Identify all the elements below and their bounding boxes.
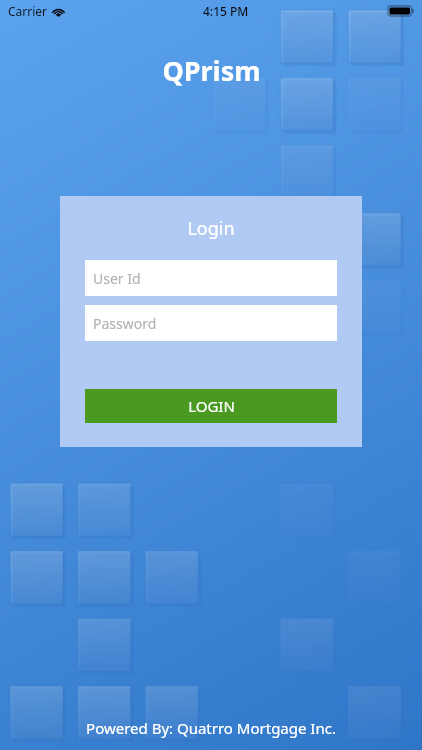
staticText: Login [187, 216, 235, 241]
staticText: LOGIN [188, 396, 235, 416]
button[interactable]: Password [85, 305, 337, 341]
staticText: QPrism [162, 52, 261, 89]
staticText: User Id [93, 269, 141, 288]
staticText: Powered By: Quatrro Mortgage Inc. [86, 718, 336, 738]
button[interactable]: LOGIN [85, 389, 337, 423]
button[interactable]: User Id [85, 260, 337, 296]
staticText: 4:15 PM [203, 3, 249, 19]
staticText: Carrier [8, 3, 48, 19]
staticText: Password [93, 314, 157, 333]
